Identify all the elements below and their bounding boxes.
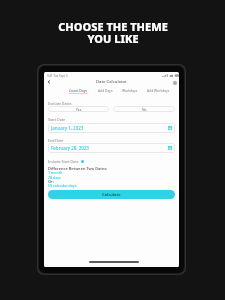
staticText: Date Calculator (96, 79, 127, 85)
staticText: Or: (48, 179, 54, 184)
button[interactable]: Settings (170, 78, 179, 87)
staticText: Yes (76, 107, 82, 112)
staticText: Add Days (98, 88, 113, 92)
button[interactable]: Back (44, 77, 53, 86)
staticText: 9:41 Tue Sept 5 (47, 74, 68, 78)
button[interactable]: Calculate (48, 190, 175, 199)
button[interactable]: No (113, 106, 175, 112)
staticText: Count Days (69, 88, 88, 92)
staticText: Start Date (48, 117, 65, 122)
staticText: 28 days (48, 175, 61, 180)
button[interactable]: Include Start Date (48, 159, 84, 164)
staticText: End Date (48, 138, 64, 143)
staticText: Workdays (122, 88, 138, 92)
staticText: Calculate (102, 192, 121, 197)
staticText: February 28, 2023 (51, 145, 89, 151)
button[interactable]: February 28, 2023 (48, 143, 175, 153)
button[interactable]: January 1, 2023 (48, 123, 175, 133)
button[interactable]: Workdays (121, 88, 138, 92)
button[interactable]: Yes (48, 106, 109, 112)
staticText: CHOOSE THE THEME (58, 19, 168, 34)
staticText: Exclude Dates (48, 101, 72, 106)
button[interactable]: Add Workdays (147, 88, 170, 92)
staticText: Difference Between Two Dates: (48, 166, 108, 171)
button[interactable]: Count Days (69, 88, 88, 92)
staticText: 1 month (48, 170, 63, 175)
staticText: 59 calendar days (48, 183, 77, 188)
staticText: Include Start Date (48, 159, 79, 164)
button[interactable]: Add Days (97, 88, 113, 92)
staticText: YOU LIKE (87, 31, 139, 46)
staticText: Add Workdays (147, 88, 170, 92)
staticText: January 1, 2023 (51, 125, 84, 131)
staticText: No (142, 107, 147, 112)
